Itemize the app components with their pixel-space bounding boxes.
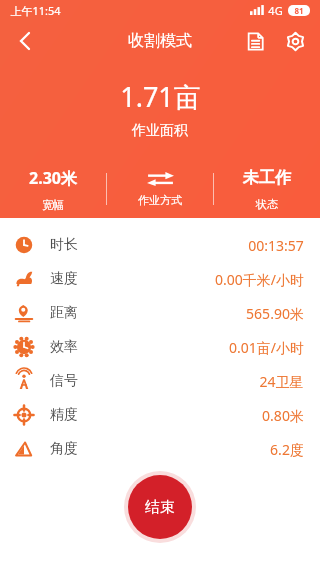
button[interactable]: 时长 xyxy=(0,228,320,262)
button[interactable]: 信号 xyxy=(0,364,320,398)
button[interactable]: 结束 xyxy=(124,471,196,543)
staticText: 结束 xyxy=(145,498,175,517)
staticText: 状态 xyxy=(256,197,278,211)
staticText: 上午11:54 xyxy=(10,3,61,18)
staticText: 1.71亩 xyxy=(120,78,201,115)
button[interactable]: 速度 xyxy=(0,262,320,296)
staticText: 00:13:57 xyxy=(248,236,304,255)
staticText: 收割模式 xyxy=(128,31,192,51)
staticText: 0.00千米/小时 xyxy=(215,270,304,289)
staticText: 角度 xyxy=(50,440,78,458)
staticText: 24卫星 xyxy=(259,372,304,391)
button[interactable]: 角度 xyxy=(0,432,320,466)
button[interactable]: 效率 xyxy=(0,330,320,364)
staticText: 宽幅 xyxy=(42,198,64,212)
button[interactable]: Settings xyxy=(275,21,315,61)
button[interactable]: Back xyxy=(5,21,45,61)
staticText: 565.90米 xyxy=(246,304,304,323)
staticText: 0.01亩/小时 xyxy=(229,338,304,357)
staticText: 4G xyxy=(268,3,283,18)
staticText: 速度 xyxy=(50,270,78,288)
button[interactable]: Records xyxy=(235,21,275,61)
button[interactable]: 2.30米 xyxy=(0,160,106,218)
staticText: 效率 xyxy=(50,338,78,356)
staticText: 时长 xyxy=(50,236,78,254)
staticText: 81 xyxy=(294,5,304,16)
staticText: 作业面积 xyxy=(132,122,188,140)
button[interactable]: 精度 xyxy=(0,398,320,432)
staticText: 6.2度 xyxy=(270,440,304,459)
staticText: 未工作 xyxy=(243,168,291,188)
button[interactable]: 作业方式 xyxy=(107,160,213,218)
staticText: 0.80米 xyxy=(262,406,304,425)
staticText: 精度 xyxy=(50,406,78,424)
staticText: 信号 xyxy=(50,372,78,390)
button[interactable]: 距离 xyxy=(0,296,320,330)
staticText: 2.30米 xyxy=(29,167,77,189)
button[interactable]: 未工作 xyxy=(214,160,320,218)
staticText: 距离 xyxy=(50,304,78,322)
staticText: 作业方式 xyxy=(138,193,182,207)
